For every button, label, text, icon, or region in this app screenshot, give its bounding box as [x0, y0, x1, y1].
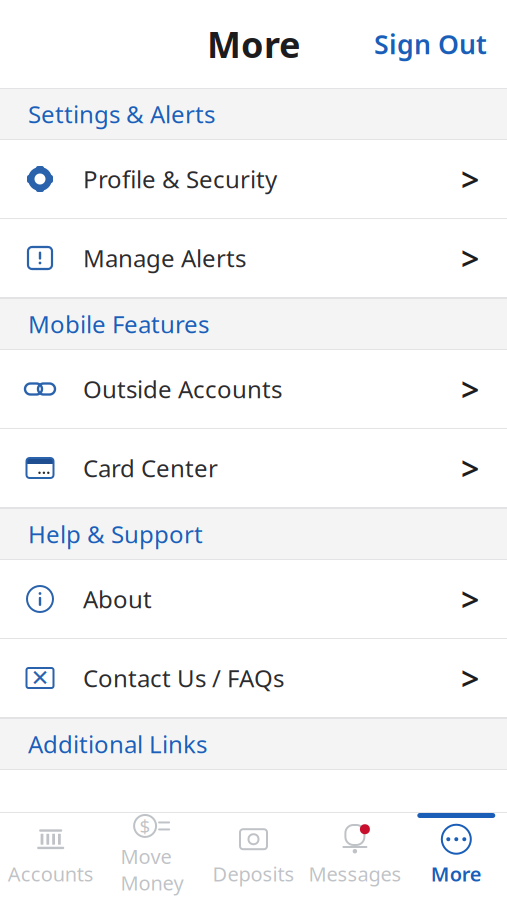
button[interactable]: Outside Accounts [0, 350, 507, 429]
staticText: Mobile Features [28, 308, 209, 340]
staticText: Outside Accounts [83, 373, 282, 405]
staticText: Move Money [121, 843, 184, 896]
staticText: > [461, 158, 479, 200]
staticText: > [461, 447, 479, 489]
button[interactable]: $ [101, 813, 203, 900]
button[interactable]: More [406, 813, 507, 900]
staticText: > [461, 237, 479, 279]
staticText: > [461, 368, 479, 410]
staticText: $ [140, 813, 151, 838]
button[interactable]: Card Center [0, 429, 507, 508]
button[interactable]: About [0, 560, 507, 639]
staticText: > [461, 578, 479, 620]
button[interactable]: Profile & Security [0, 140, 507, 219]
button[interactable]: ✕ [0, 639, 507, 718]
staticText: Messages [308, 860, 401, 887]
staticText: Card Center [83, 452, 218, 484]
staticText: Sign Out [374, 26, 487, 62]
staticText: More [207, 20, 300, 68]
staticText: Settings & Alerts [28, 98, 215, 130]
staticText: Accounts [8, 860, 94, 887]
staticText: Additional Links [28, 728, 207, 760]
button[interactable]: Accounts [0, 813, 101, 900]
staticText: More [431, 860, 482, 887]
button[interactable]: Messages [304, 813, 406, 900]
staticText: ✕ [30, 665, 49, 691]
button[interactable]: Deposits [203, 813, 304, 900]
staticText: Contact Us / FAQs [83, 662, 284, 694]
button[interactable]: Manage Alerts [0, 219, 507, 298]
staticText: > [461, 657, 479, 699]
staticText: Profile & Security [83, 163, 277, 195]
staticText: Deposits [212, 860, 294, 887]
staticText: Help & Support [28, 518, 203, 550]
button[interactable]: Sign Out [354, 14, 507, 74]
staticText: Manage Alerts [83, 242, 246, 274]
staticText: About [83, 583, 152, 615]
